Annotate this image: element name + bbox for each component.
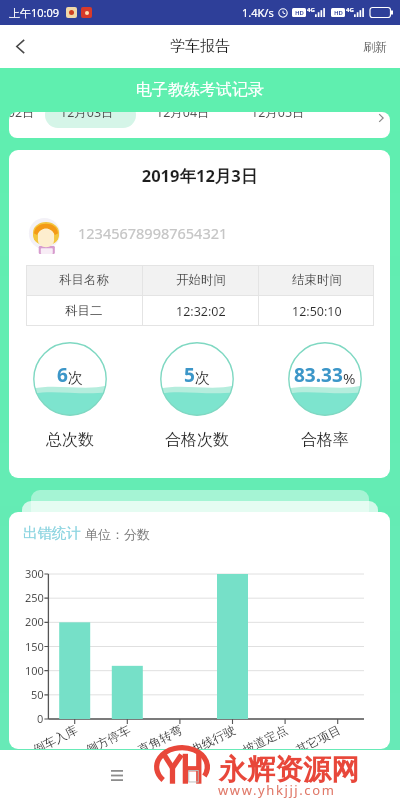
staticText: 250 (25, 590, 44, 605)
staticText: 150 (25, 639, 44, 654)
staticText: 倒车入库 (30, 722, 80, 749)
button[interactable]: 刷新 (350, 25, 400, 68)
staticText: 0 (37, 711, 44, 726)
staticText: 科目二 (65, 303, 103, 319)
button[interactable]: 12月04日 (156, 112, 210, 123)
staticText: 12月05日 (251, 112, 305, 121)
staticText: www.yhkjjj.com (218, 781, 336, 799)
staticText: 1.4K/s (242, 5, 274, 20)
staticText: 单位：分数 (85, 526, 150, 542)
staticText: 开始时间 (176, 272, 226, 288)
staticText: % (343, 368, 356, 388)
staticText: 12月04日 (156, 112, 210, 121)
staticText: 侧方停车 (83, 722, 133, 749)
staticText: 电子教练考试记录 (136, 80, 264, 100)
staticText: HD (334, 9, 343, 17)
staticText: 2019年12月3日 (9, 164, 390, 187)
staticText: 科目名称 (59, 272, 109, 288)
staticText: 上午10:09 (9, 5, 60, 20)
staticText: 次 (195, 369, 210, 388)
staticText: 12月02日 (9, 112, 35, 121)
staticText: 300 (25, 566, 44, 581)
staticText: 次 (68, 369, 83, 388)
staticText: 直角转弯 (135, 722, 185, 749)
staticText: 刷新 (363, 39, 387, 54)
button[interactable]: 12月02日 (9, 112, 35, 123)
staticText: HD (295, 9, 304, 17)
staticText: 12:50:10 (292, 303, 342, 320)
staticText: 合格次数 (165, 430, 229, 450)
staticText: 永辉资源网 (219, 752, 359, 787)
staticText: 6 (57, 362, 68, 388)
staticText: 4G (346, 6, 354, 14)
staticText: 5 (184, 362, 195, 388)
staticText: 结束时间 (292, 272, 342, 288)
staticText: 合格率 (301, 430, 349, 450)
staticText: 123456789987654321 (78, 223, 228, 243)
staticText: 学车报告 (170, 37, 230, 56)
staticText: 50 (31, 687, 44, 702)
button[interactable]: Next (371, 112, 390, 128)
button[interactable] (45, 112, 136, 128)
staticText: 4G (307, 6, 315, 14)
staticText: 出错统计 (23, 524, 81, 542)
button[interactable]: 12月03日 (60, 112, 114, 123)
staticText: 其它项目 (293, 722, 343, 749)
button[interactable]: Menu (103, 762, 131, 789)
staticText: 总次数 (46, 430, 94, 450)
button[interactable]: Back (0, 25, 40, 68)
staticText: 100 (25, 663, 44, 678)
staticText: 曲线行驶 (188, 722, 238, 749)
button[interactable]: 12月05日 (251, 112, 305, 123)
staticText: 83.33 (294, 362, 343, 388)
staticText: 坡道定点 (240, 722, 290, 749)
staticText: 12:32:02 (176, 303, 226, 320)
staticText: 12月03日 (60, 112, 114, 121)
staticText: 200 (25, 614, 44, 629)
